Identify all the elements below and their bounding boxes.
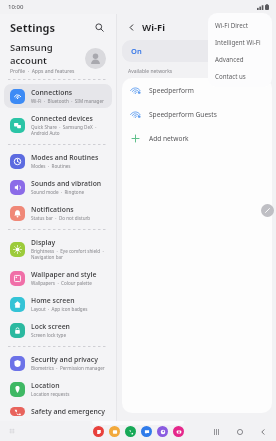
button[interactable]: More options	[258, 18, 276, 36]
staticText: Modes and Routines	[31, 153, 99, 162]
button[interactable]: Speedperform Guests	[122, 102, 272, 126]
button[interactable]: messages	[141, 426, 152, 437]
staticText: Advanced settings	[215, 55, 265, 63]
button[interactable]: Recents	[211, 426, 222, 437]
staticText: Connections	[31, 88, 73, 97]
staticText: Brightness · Eye comfort shield · Naviga…	[31, 248, 104, 260]
staticText: Biometrics · Permission manager	[31, 365, 105, 371]
button[interactable]: camera	[173, 426, 184, 437]
staticText: Speedperform Guests	[149, 110, 217, 119]
button[interactable]: Speedperform	[122, 78, 272, 102]
staticText: Notifications	[31, 205, 74, 214]
staticText: Samsung account	[10, 41, 85, 67]
staticText: Status bar · Do not disturb	[31, 215, 91, 221]
staticText: Layout · App icon badges	[31, 306, 88, 312]
staticText: Available networks	[128, 68, 173, 75]
button[interactable]: Connected devices	[4, 110, 112, 140]
staticText: Profile · Apps and features	[10, 68, 75, 75]
staticText: Quick Share · Samsung DeX · Android Auto	[31, 124, 97, 136]
button[interactable]: Search	[90, 18, 108, 36]
staticText: Display	[31, 238, 56, 247]
button[interactable]: Connections	[4, 84, 112, 108]
staticText: Wi-Fi	[142, 21, 166, 34]
button[interactable]: Add network	[122, 126, 272, 150]
button[interactable]: files	[109, 426, 120, 437]
staticText: 10:00	[8, 3, 24, 11]
staticText: Lock screen	[31, 322, 70, 331]
staticText: Wallpapers · Colour palette	[31, 280, 92, 286]
button[interactable]: internet	[157, 426, 168, 437]
staticText: Contact us	[215, 72, 246, 80]
button[interactable]: Intelligent Wi-Fi	[208, 33, 272, 50]
button[interactable]: Notifications	[4, 201, 112, 225]
staticText: Screen lock type	[31, 332, 66, 338]
button[interactable]: Security and privacy	[4, 351, 112, 375]
staticText: Wi-Fi · Bluetooth · SIM manager	[31, 98, 104, 104]
staticText: Security and privacy	[31, 355, 98, 364]
button[interactable]: phone	[125, 426, 136, 437]
staticText: Intelligent Wi-Fi	[215, 38, 261, 46]
staticText: Wallpaper and style	[31, 270, 97, 279]
button[interactable]: Advanced settings	[208, 50, 272, 67]
staticText: Safety and emergency	[31, 407, 105, 416]
button[interactable]: Samsung account	[0, 40, 116, 76]
staticText: Speedperform	[149, 86, 194, 95]
staticText: Add network	[149, 134, 189, 143]
button[interactable]: Safety and emergency	[4, 403, 112, 420]
button[interactable]: Home	[234, 426, 245, 437]
button[interactable]: Display	[4, 234, 112, 264]
staticText: Modes · Routines	[31, 163, 71, 169]
staticText: Connected devices	[31, 114, 93, 123]
button[interactable]: Contact us	[208, 67, 272, 84]
button[interactable]: Back	[123, 19, 139, 35]
staticText: Location	[31, 381, 60, 390]
staticText: Home screen	[31, 296, 75, 305]
button[interactable]: Sounds and vibration	[4, 175, 112, 199]
button[interactable]: On	[122, 40, 271, 62]
button[interactable]: Modes and Routines	[4, 149, 112, 173]
staticText: Sound mode · Ringtone	[31, 189, 85, 195]
button[interactable]: Edit	[261, 204, 274, 217]
staticText: Settings	[10, 20, 56, 35]
staticText: Wi-Fi Direct	[215, 21, 248, 29]
staticText: Location requests	[31, 391, 70, 397]
button[interactable]: Wallpaper and style	[4, 266, 112, 290]
button[interactable]: Wi-Fi Direct	[208, 16, 272, 33]
button[interactable]: Lock screen	[4, 318, 112, 342]
button[interactable]: Home screen	[4, 292, 112, 316]
button[interactable]: Location	[4, 377, 112, 401]
button[interactable]: Back	[257, 426, 268, 437]
staticText: On	[131, 46, 142, 56]
staticText: Sounds and vibration	[31, 179, 102, 188]
button[interactable]: notes	[93, 426, 104, 437]
